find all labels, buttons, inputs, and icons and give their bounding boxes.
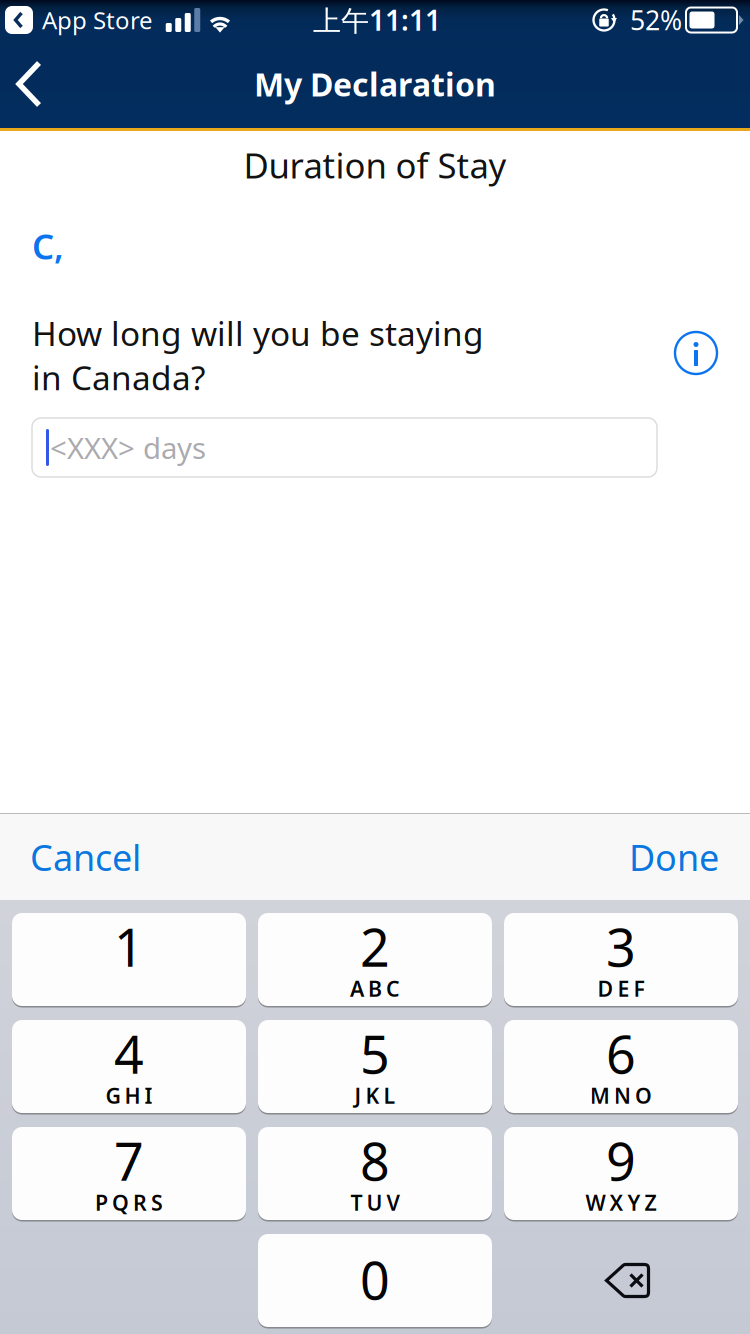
staticText: 2 [360,912,390,981]
button[interactable]: 5 [258,1020,492,1113]
staticText: 上午11:11 [313,1,441,39]
staticText: 6 [606,1019,636,1088]
button[interactable]: 0 [258,1234,492,1327]
button[interactable]: 8 [258,1127,492,1220]
staticText: 9 [606,1126,636,1195]
button[interactable]: Cancel [0,809,165,905]
staticText: 7 [114,1126,144,1195]
button[interactable]: Done [605,809,750,905]
button[interactable]: 6 [504,1020,738,1113]
button[interactable]: 2 [258,913,492,1006]
staticText: Duration of Stay [243,142,506,188]
staticText: Cancel [30,833,141,881]
button[interactable]: Back to App Store [5,0,160,40]
staticText: Done [629,833,719,881]
staticText: App Store [42,4,153,36]
staticText: 1 [114,912,144,981]
staticText: How long will you be staying in Canada? [32,311,484,399]
staticText: 5 [360,1019,390,1088]
staticText: 3 [606,912,636,981]
button[interactable]: Delete [504,1234,738,1327]
button[interactable]: 7 [12,1127,246,1220]
staticText: GHI [105,1081,152,1110]
button[interactable]: Number of days [32,418,657,477]
staticText: MNO [590,1081,652,1110]
staticText: My Declaration [254,63,496,105]
button[interactable]: Back [0,41,76,127]
staticText: 8 [360,1126,390,1195]
button[interactable]: More information [668,325,724,381]
button[interactable]: 3 [504,913,738,1006]
button[interactable]: 4 [12,1020,246,1113]
staticText: PQRS [95,1188,163,1217]
staticText: DEF [597,974,644,1003]
staticText: 4 [114,1019,144,1088]
staticText: <XXX> days [50,428,206,467]
staticText: C, [32,223,64,269]
staticText: 52% [630,2,682,38]
button[interactable]: 9 [504,1127,738,1220]
staticText: WXYZ [585,1188,656,1217]
staticText: JKL [354,1081,395,1110]
staticText: TUV [350,1188,399,1217]
button[interactable]: 1 [12,913,246,1006]
staticText: ABC [350,974,400,1003]
staticText: 0 [360,1245,390,1314]
